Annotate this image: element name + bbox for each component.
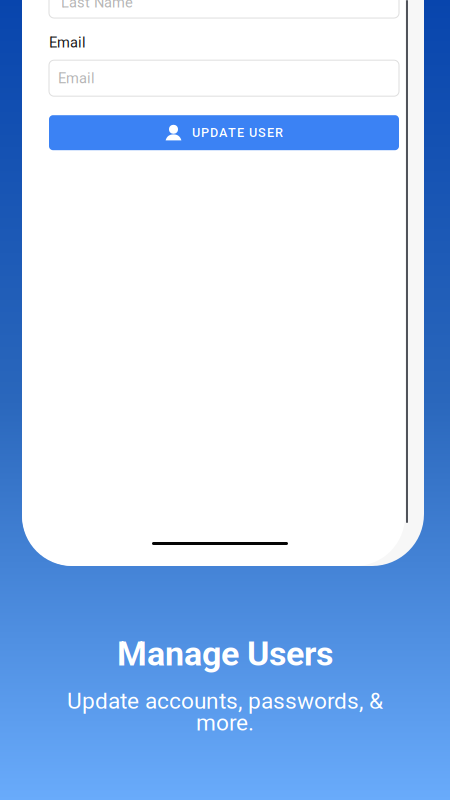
button[interactable]: U P D A T E U S E R xyxy=(49,115,399,150)
staticText: more. xyxy=(196,709,254,736)
staticText: U P D A T E U S E R xyxy=(192,125,283,140)
staticText: Last Name xyxy=(61,0,133,11)
staticText: Email xyxy=(49,34,86,51)
staticText: Manage Users xyxy=(117,634,333,674)
staticText: Email xyxy=(58,70,95,87)
staticText: Update accounts, passwords, & xyxy=(67,688,383,714)
